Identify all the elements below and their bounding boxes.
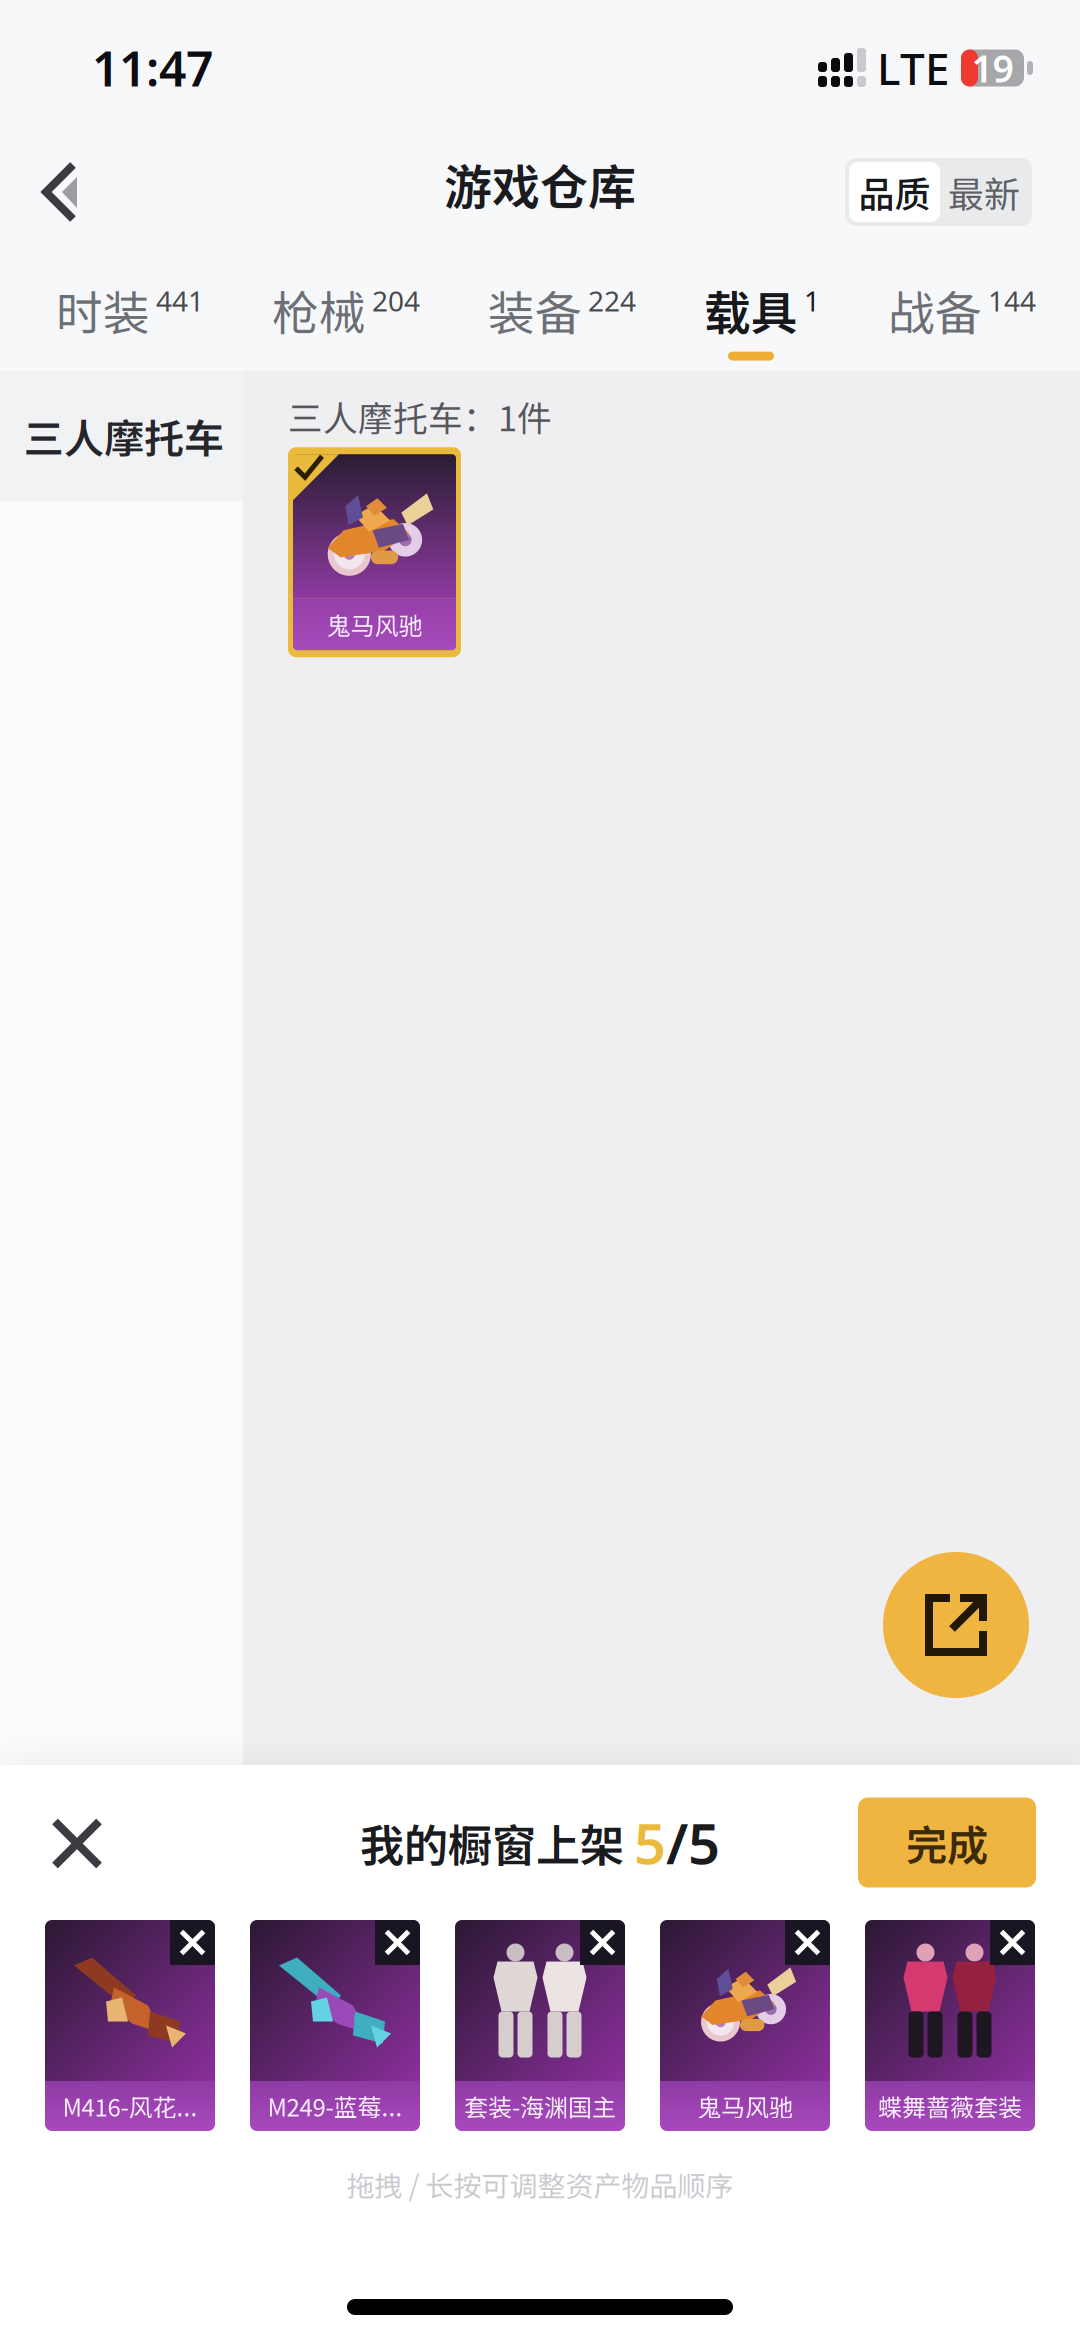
staticText: /5 [666, 1805, 720, 1880]
staticText: 时装 [56, 276, 150, 344]
button[interactable]: Share showcase [883, 1552, 1029, 1698]
staticText: 441 [156, 282, 204, 319]
staticText: 1 [804, 282, 820, 319]
button[interactable]: 三人摩托车 [0, 371, 243, 501]
staticText: 载具 [704, 276, 798, 344]
staticText: 最新 [948, 166, 1020, 218]
staticText: 战备 [888, 276, 982, 344]
button[interactable]: 装备 [488, 250, 636, 371]
button[interactable]: M416-风花... [45, 1920, 215, 2131]
staticText: 套装-海渊国主 [464, 2089, 616, 2123]
button[interactable]: M249-蓝莓... [250, 1920, 420, 2131]
button[interactable]: 战备 [888, 250, 1036, 371]
button[interactable]: 时装 [56, 250, 204, 371]
staticText: 蝶舞蔷薇套装 [878, 2089, 1022, 2123]
staticText: 144 [988, 282, 1036, 319]
button[interactable]: 鬼马风驰 [288, 447, 461, 657]
staticText: 224 [588, 282, 636, 319]
button[interactable]: 鬼马风驰 [660, 1920, 830, 2131]
staticText: 我的橱窗上架 [360, 1811, 634, 1874]
staticText: LTE [877, 39, 950, 97]
staticText: 品质 [858, 166, 930, 218]
button[interactable]: 套装-海渊国主 [455, 1920, 625, 2131]
staticText: 拖拽 / 长按可调整资产物品顺序 [346, 2164, 733, 2204]
staticText: 11:47 [92, 36, 213, 100]
staticText: 鬼马风驰 [326, 607, 422, 642]
staticText: M416-风花... [62, 2089, 197, 2123]
button[interactable]: 枪械 [272, 250, 420, 371]
staticText: 三人摩托车 [24, 407, 224, 465]
staticText: 19 [971, 43, 1013, 93]
button[interactable]: 品质 [849, 162, 940, 222]
staticText: 游戏仓库 [444, 149, 636, 219]
staticText: 装备 [488, 276, 582, 344]
button[interactable]: 载具 [704, 250, 820, 371]
staticText: 5 [634, 1805, 666, 1880]
button[interactable]: Close [30, 1796, 122, 1888]
staticText: 三人摩托车：1件 [288, 391, 552, 441]
staticText: M249-蓝莓... [267, 2089, 402, 2123]
button[interactable]: 完成 [858, 1797, 1036, 1887]
button[interactable]: 蝶舞蔷薇套装 [865, 1920, 1035, 2131]
button[interactable]: 最新 [940, 162, 1028, 222]
button[interactable]: Back [14, 142, 104, 242]
staticText: 完成 [906, 1813, 988, 1872]
staticText: 鬼马风驰 [697, 2089, 793, 2123]
staticText: 枪械 [272, 276, 366, 344]
staticText: 204 [372, 282, 420, 319]
